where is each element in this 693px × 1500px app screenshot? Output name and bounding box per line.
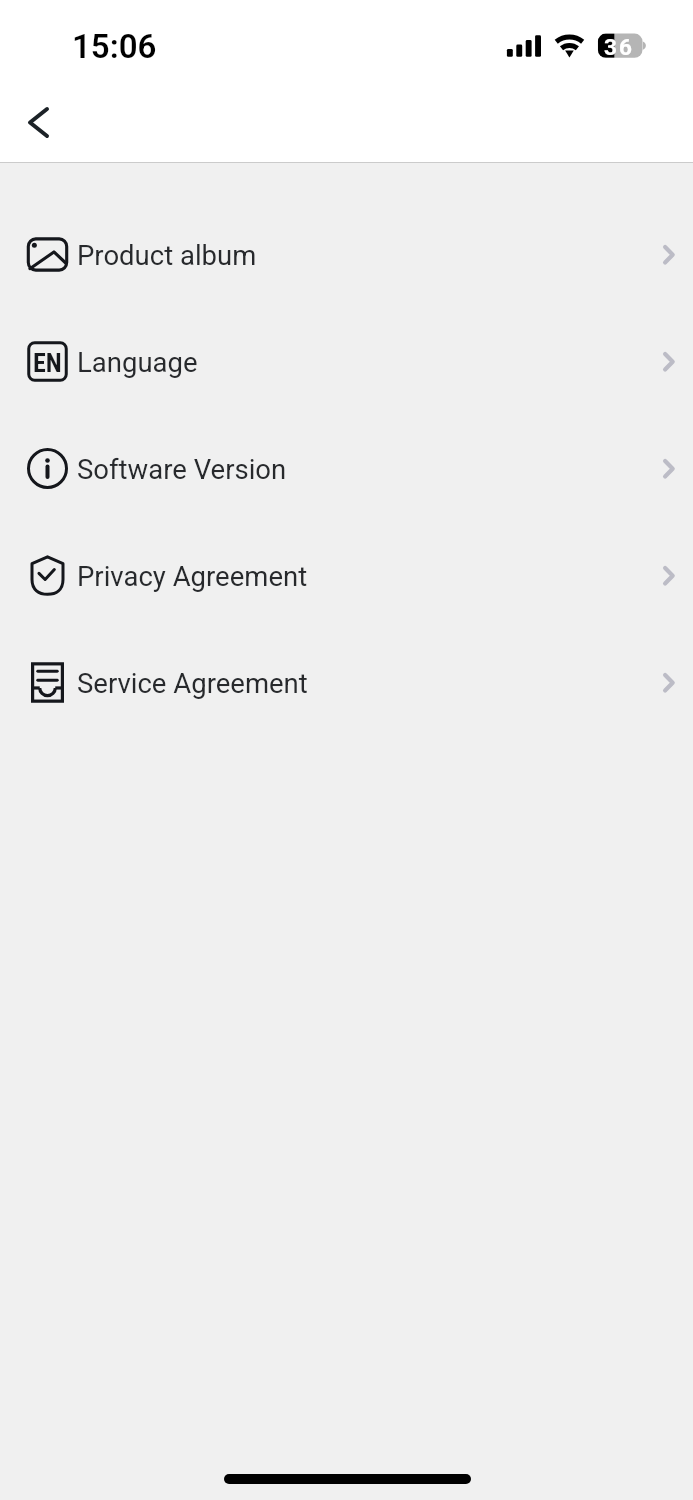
staticText: Privacy Agreement bbox=[77, 560, 308, 592]
button[interactable]: Software Version bbox=[0, 415, 693, 522]
staticText: 36 bbox=[604, 34, 635, 60]
button[interactable]: Product album bbox=[0, 201, 693, 308]
button[interactable]: Back bbox=[8, 92, 68, 152]
staticText: Language bbox=[77, 346, 198, 378]
button[interactable]: Privacy Agreement bbox=[0, 522, 693, 629]
staticText: EN bbox=[33, 348, 62, 378]
staticText: Product album bbox=[77, 239, 257, 271]
staticText: Software Version bbox=[77, 453, 287, 485]
staticText: 15:06 bbox=[72, 27, 157, 66]
button[interactable]: Service Agreement bbox=[0, 629, 693, 736]
staticText: Service Agreement bbox=[77, 667, 308, 699]
button[interactable]: EN bbox=[0, 308, 693, 415]
